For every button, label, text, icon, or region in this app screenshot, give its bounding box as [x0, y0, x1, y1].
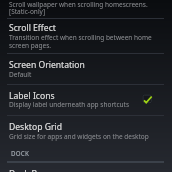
button[interactable]	[0, 117, 172, 145]
staticText: Transition effect when scrolling between…	[9, 33, 152, 42]
staticText: Display label underneath app shortcuts	[9, 100, 130, 109]
staticText: screen pages.	[9, 41, 51, 50]
button[interactable]	[0, 55, 172, 84]
staticText: Dock Bar	[9, 168, 46, 172]
button[interactable]: Label Icons, enabled	[141, 93, 155, 107]
button[interactable]	[0, 19, 172, 53]
button[interactable]	[0, 0, 172, 18]
staticText: [Static-only]	[9, 7, 46, 16]
staticText: Label Icons	[9, 90, 55, 102]
button[interactable]	[0, 163, 172, 172]
staticText: Default	[9, 70, 32, 79]
staticText: Scroll wallpaper when scrolling homescre…	[9, 0, 148, 9]
staticText: Grid size for apps and widgets on the de…	[9, 132, 149, 141]
staticText: Desktop Grid	[9, 121, 62, 133]
button[interactable]	[0, 85, 172, 115]
staticText: DOCK	[11, 149, 30, 157]
staticText: Scroll Effect	[9, 22, 56, 34]
staticText: Screen Orientation	[9, 59, 85, 71]
